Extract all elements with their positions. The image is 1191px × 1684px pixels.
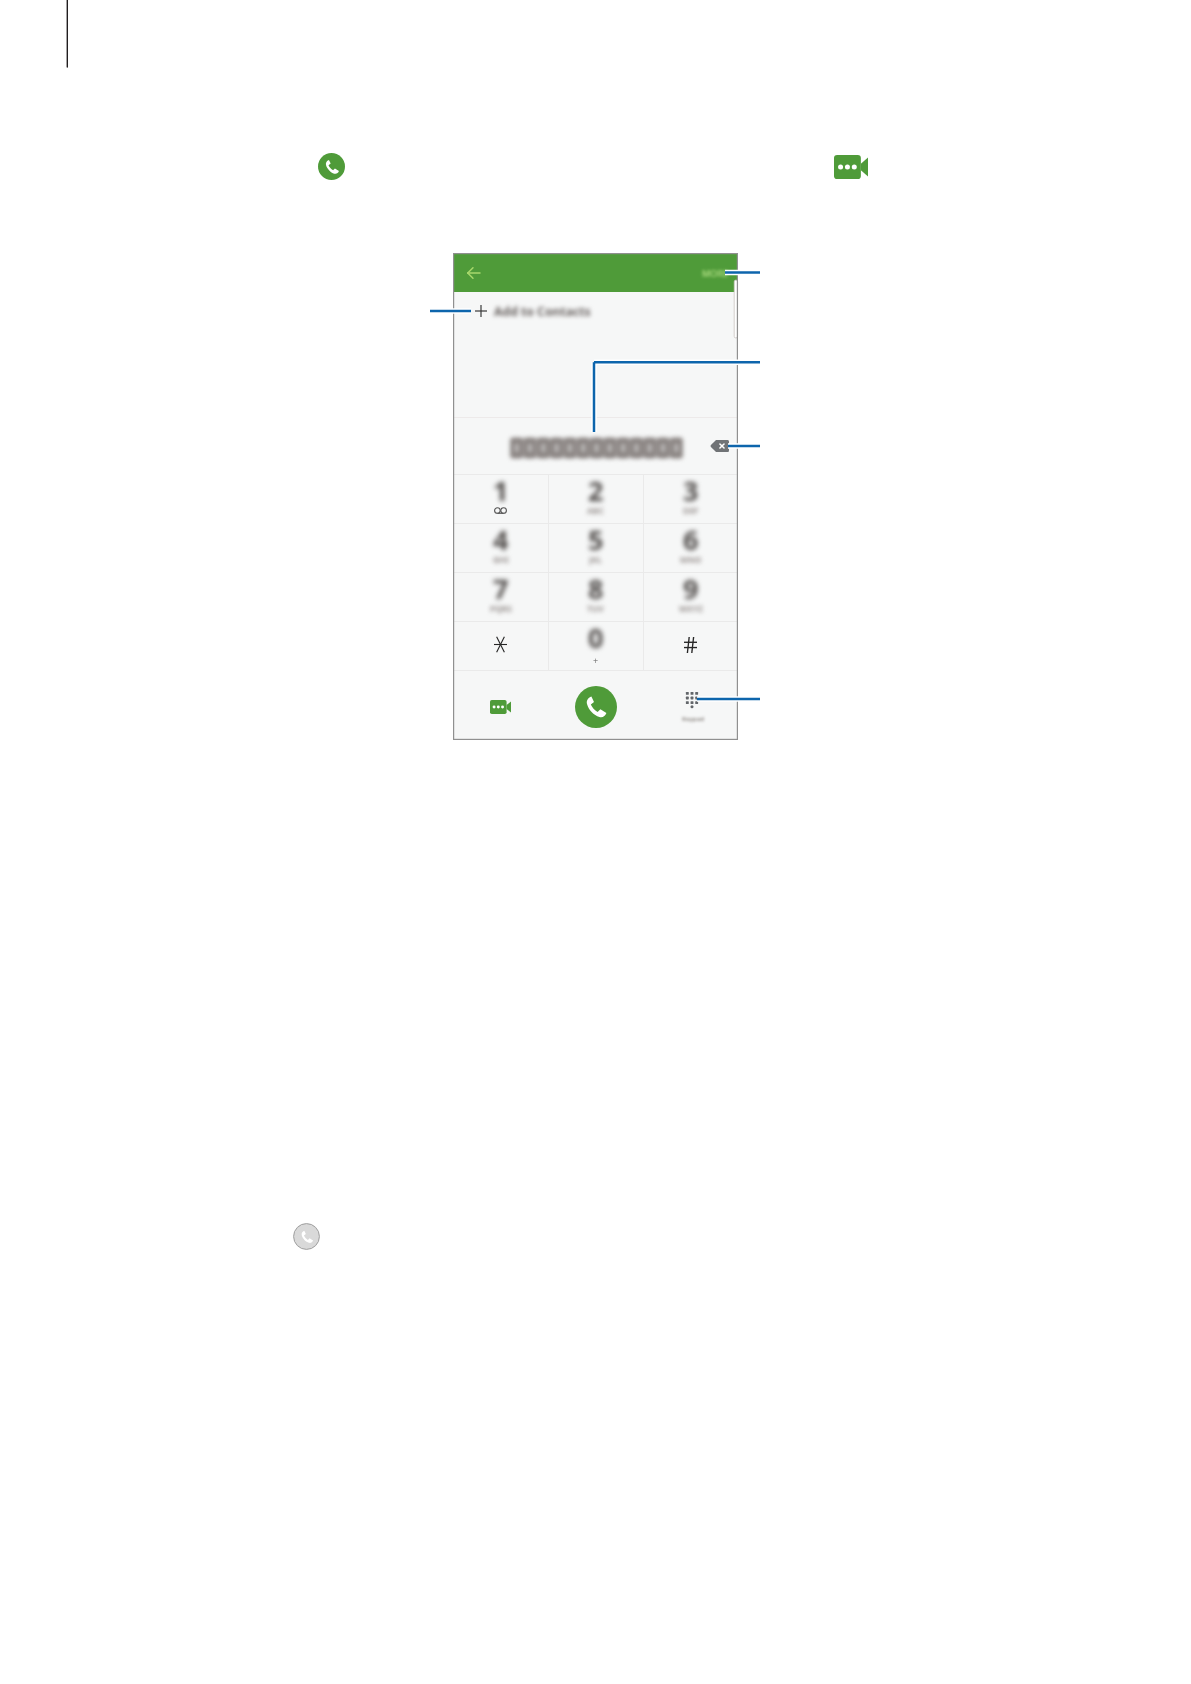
button[interactable]: 1 xyxy=(453,474,548,523)
staticText: 7 xyxy=(493,570,509,607)
button[interactable] xyxy=(453,621,548,670)
button[interactable]: 2 xyxy=(548,474,643,523)
staticText: Keypad xyxy=(682,715,705,723)
staticText: WXYZ xyxy=(679,603,703,614)
button[interactable]: Phone xyxy=(293,1223,320,1250)
button[interactable]: Keypad xyxy=(675,686,709,726)
button[interactable]: Back xyxy=(453,253,491,292)
staticText: + xyxy=(593,654,599,666)
button[interactable]: Phone xyxy=(318,153,345,180)
staticText: 3 xyxy=(683,472,699,509)
button[interactable]: 6 xyxy=(643,523,738,572)
button[interactable]: Delete xyxy=(706,435,732,457)
staticText: DEF xyxy=(683,505,699,516)
button[interactable]: Add to Contacts xyxy=(453,297,738,325)
button[interactable]: 4 xyxy=(453,523,548,572)
button[interactable]: 7 xyxy=(453,572,548,621)
staticText: 1 xyxy=(493,472,509,509)
staticText: Add to Contacts xyxy=(494,303,591,320)
button[interactable]: MORE xyxy=(685,253,738,292)
button[interactable] xyxy=(643,621,738,670)
button[interactable]: Video call xyxy=(832,153,872,180)
staticText: 4 xyxy=(493,521,509,558)
staticText: JKL xyxy=(589,554,603,565)
staticText: MORE xyxy=(702,267,729,279)
staticText: GHI xyxy=(493,554,509,565)
staticText: 9 xyxy=(683,570,699,607)
button[interactable]: 9 xyxy=(643,572,738,621)
button[interactable]: 5 xyxy=(548,523,643,572)
staticText: 8 xyxy=(588,570,604,607)
button[interactable]: 8 xyxy=(548,572,643,621)
staticText: PQRS xyxy=(490,603,512,614)
staticText: MNO xyxy=(680,554,702,565)
staticText: TUV xyxy=(587,603,604,614)
button[interactable]: 0 xyxy=(548,621,643,670)
staticText: 6 xyxy=(683,521,699,558)
button[interactable]: 3 xyxy=(643,474,738,523)
staticText: ABC xyxy=(587,505,604,516)
button[interactable]: Call xyxy=(575,686,617,728)
staticText: 5 xyxy=(588,521,604,558)
staticText: 2 xyxy=(588,472,604,509)
button[interactable]: Video call xyxy=(483,692,518,722)
staticText: 0 xyxy=(588,619,604,656)
